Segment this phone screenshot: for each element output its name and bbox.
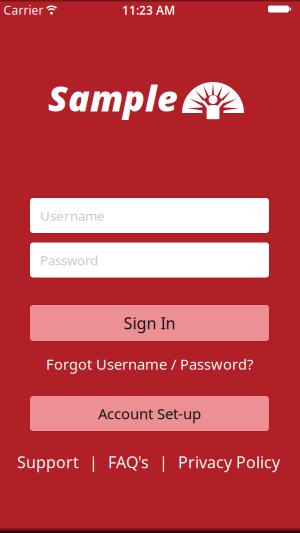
staticText: Support	[17, 451, 79, 473]
staticText: Carrier	[3, 2, 43, 18]
button[interactable]: Account Set-up	[30, 396, 269, 431]
staticText: Forgot Username / Password?	[46, 354, 253, 374]
button[interactable]: Sign In	[30, 305, 269, 341]
staticText: |	[89, 451, 98, 473]
button[interactable]: Forgot Username / Password?	[46, 354, 253, 374]
button[interactable]: Privacy Policy	[178, 451, 280, 473]
button[interactable]: Password	[30, 242, 269, 277]
staticText: |	[159, 451, 168, 473]
staticText: FAQ's	[108, 451, 149, 473]
staticText: Sample	[48, 74, 178, 121]
button[interactable]: Username	[30, 198, 269, 233]
staticText: 11:23 AM	[122, 2, 175, 18]
staticText: Sign In	[123, 312, 175, 334]
staticText: Account Set-up	[98, 404, 201, 423]
button[interactable]: Support	[17, 451, 79, 473]
button[interactable]: FAQ's	[108, 451, 149, 473]
staticText: Password	[40, 251, 98, 269]
staticText: Username	[40, 207, 105, 224]
staticText: Privacy Policy	[178, 451, 280, 473]
